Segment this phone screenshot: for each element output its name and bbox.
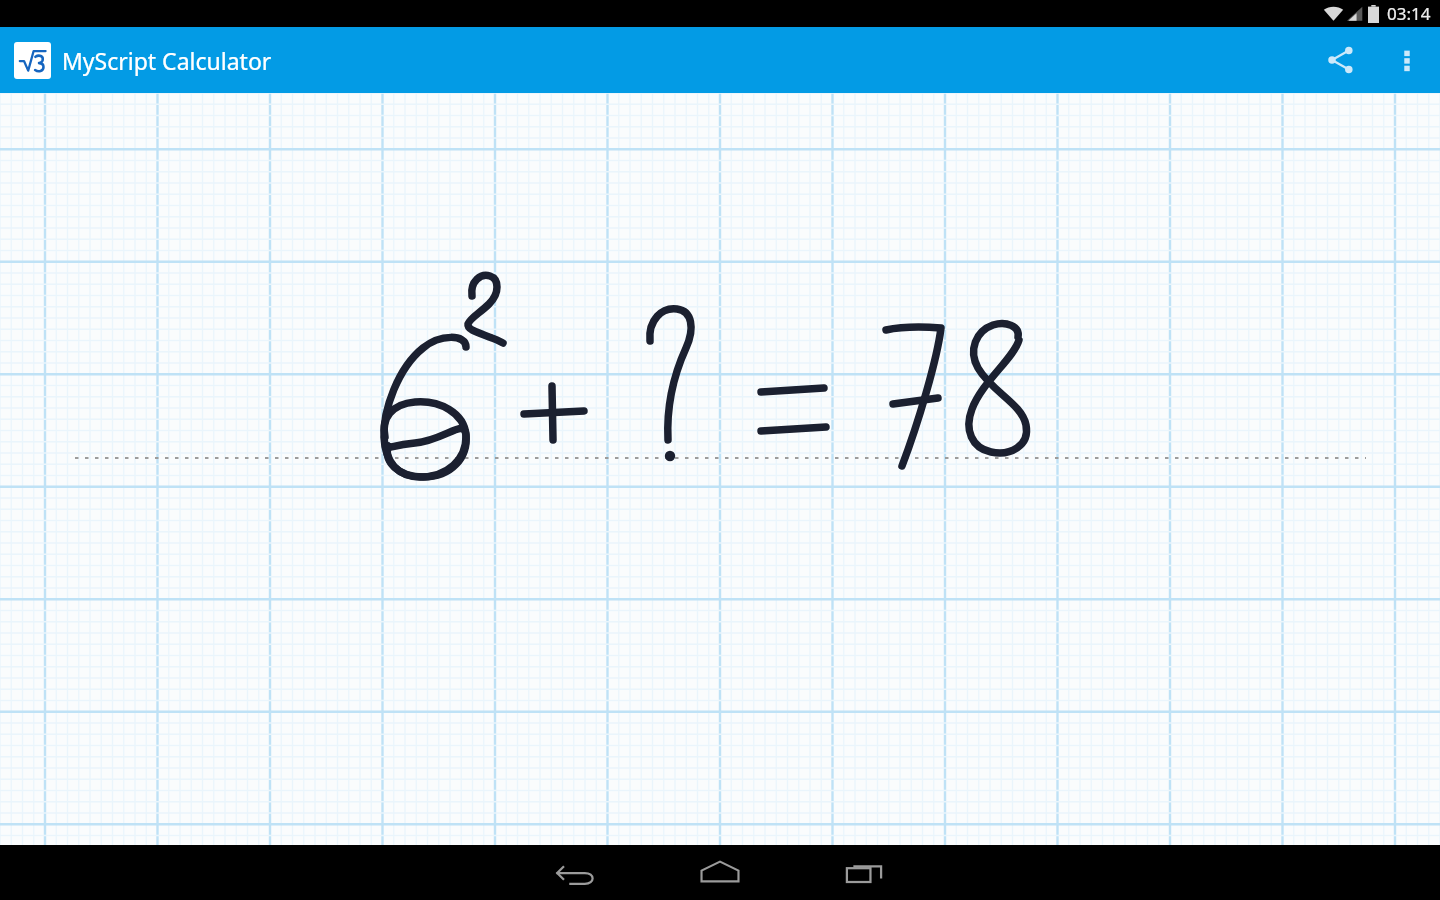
button[interactable]: More options — [1374, 27, 1440, 93]
button[interactable]: Home — [648, 845, 792, 900]
button[interactable]: Back — [504, 845, 648, 900]
staticText: MyScript Calculator — [62, 45, 272, 76]
staticText: 03:14 — [1387, 2, 1431, 25]
button[interactable]: Share — [1308, 27, 1374, 93]
button[interactable]: Recent apps — [792, 845, 936, 900]
